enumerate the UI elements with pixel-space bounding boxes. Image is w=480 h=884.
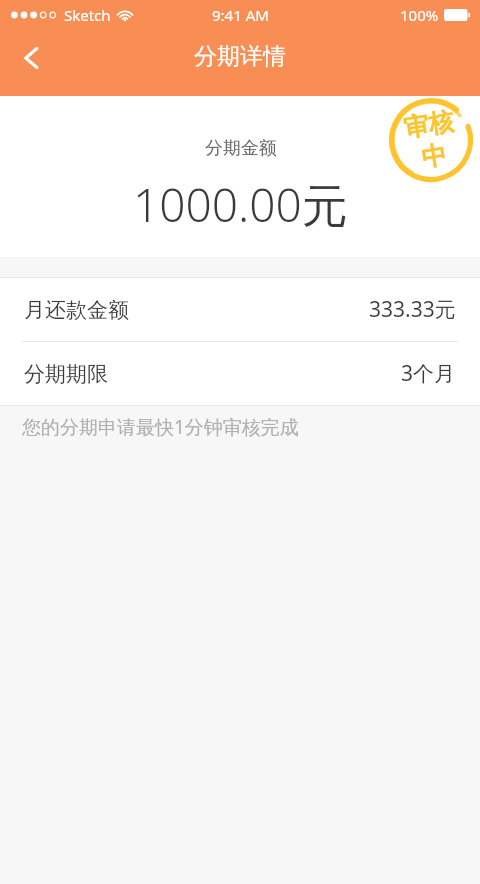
staticText: 中 [419,139,449,173]
staticText: Sketch [64,5,111,25]
staticText: 3个月 [401,359,456,388]
button[interactable]: Back [6,32,58,84]
staticText: 月还款金额 [24,297,129,323]
staticText: 分期金额 [205,137,277,160]
staticText: 分期详情 [194,42,286,71]
staticText: 分期期限 [24,361,108,387]
button[interactable]: 分期期限 [0,342,480,405]
staticText: 1000.00元 [133,173,348,236]
staticText: 您的分期申请最快1分钟审核完成 [22,414,299,440]
staticText: 100% [400,5,439,25]
staticText: 审核 [401,105,456,144]
button[interactable]: 月还款金额 [0,278,480,341]
staticText: 9:41 AM [212,5,269,25]
staticText: 333.33元 [369,295,456,324]
